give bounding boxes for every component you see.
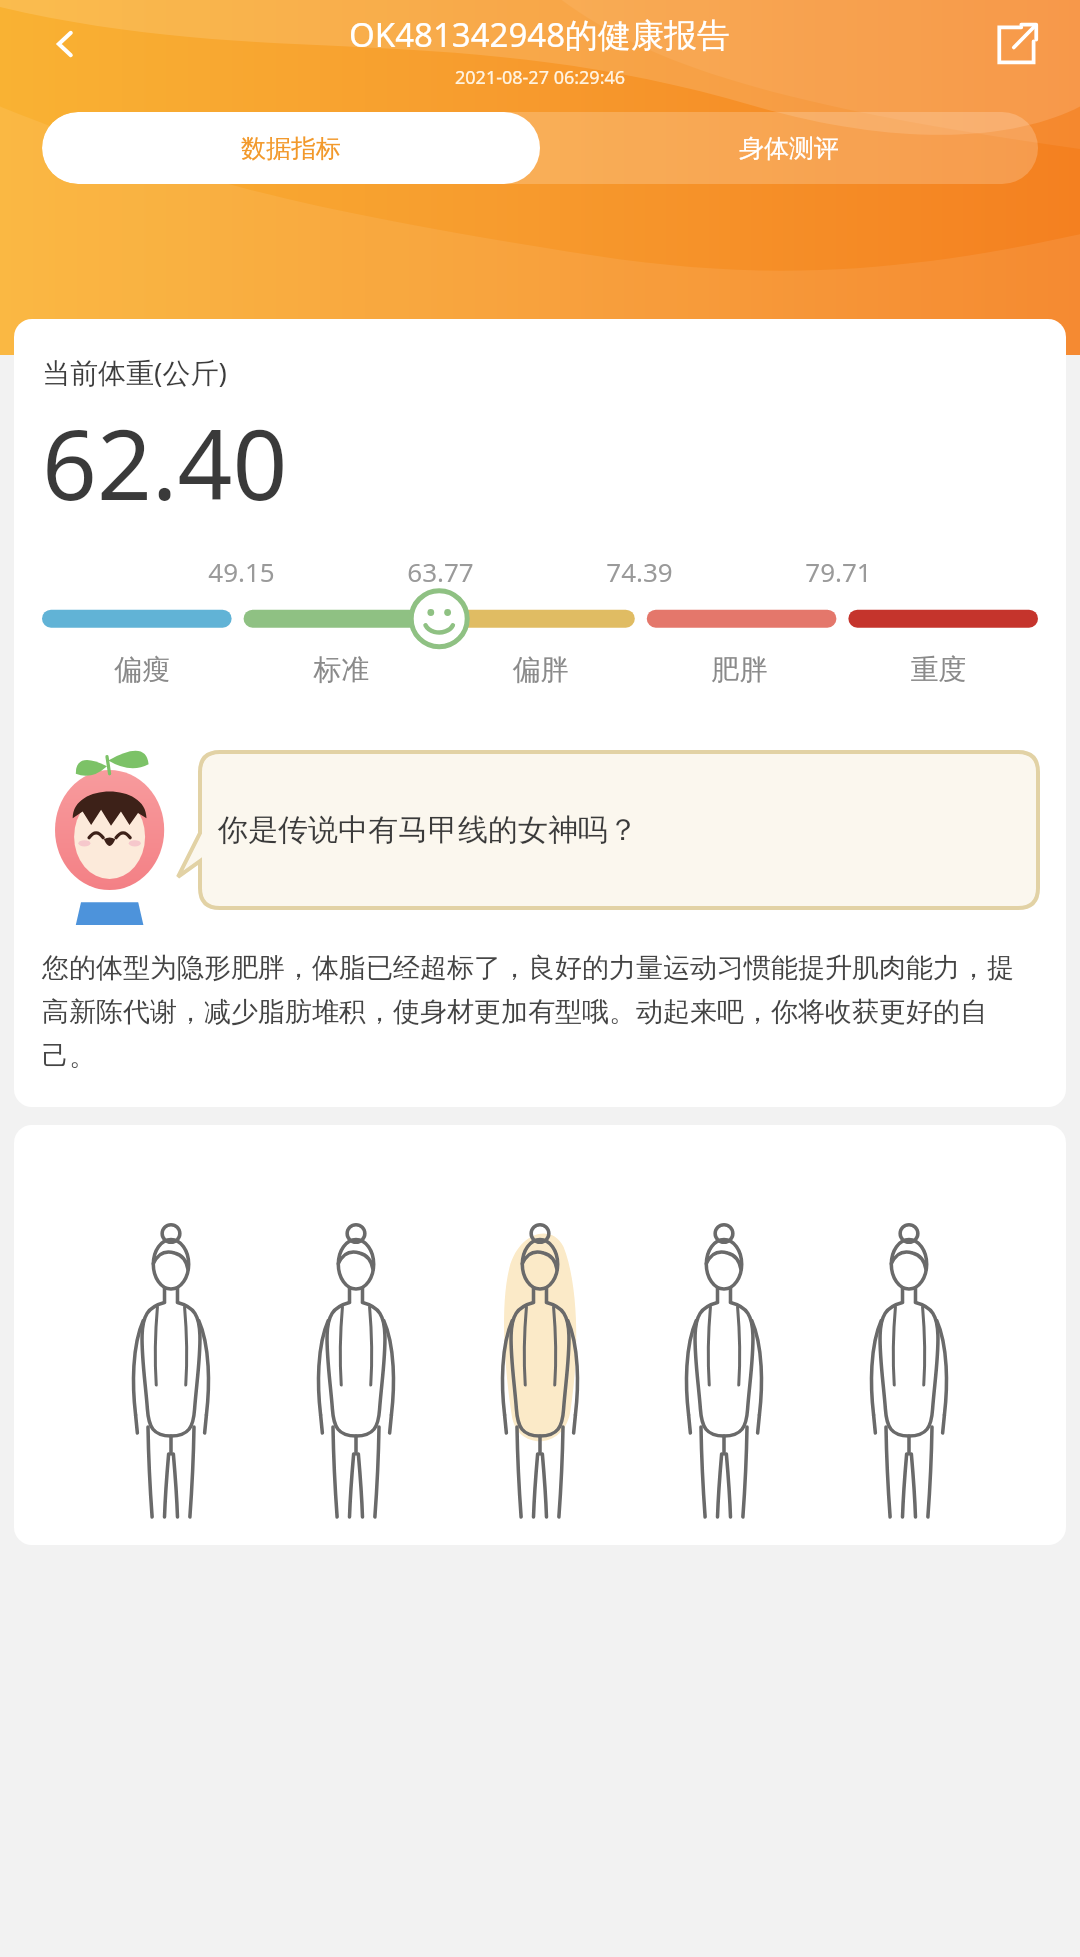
staticText: 标准 xyxy=(242,652,441,687)
staticText: 你是传说中有马甲线的女神吗？ xyxy=(218,811,638,849)
staticText: 74.39 xyxy=(540,554,739,589)
staticText: 重度 xyxy=(839,652,1038,687)
button[interactable]: Share xyxy=(978,6,1054,82)
button[interactable]: 数据指标 xyxy=(42,112,540,184)
button[interactable]: 身体测评 xyxy=(540,112,1038,184)
staticText: 身体测评 xyxy=(739,133,839,164)
staticText: 您的体型为隐形肥胖，体脂已经超标了，良好的力量运动习惯能提升肌肉能力，提高新陈代… xyxy=(42,951,1038,1073)
staticText: 63.77 xyxy=(341,554,540,589)
button[interactable]: Back xyxy=(30,8,102,80)
staticText: 数据指标 xyxy=(241,133,341,164)
staticText: OK481342948的健康报告 xyxy=(349,12,731,57)
staticText: 62.40 xyxy=(42,397,288,528)
staticText: 当前体重(公斤) xyxy=(42,353,227,391)
staticText: 79.71 xyxy=(739,554,938,589)
staticText: 49.15 xyxy=(142,554,341,589)
staticText: 偏胖 xyxy=(441,652,640,687)
staticText: 偏瘦 xyxy=(42,652,242,687)
staticText: 肥胖 xyxy=(640,652,839,687)
staticText: 2021-08-27 06:29:46 xyxy=(455,65,626,90)
